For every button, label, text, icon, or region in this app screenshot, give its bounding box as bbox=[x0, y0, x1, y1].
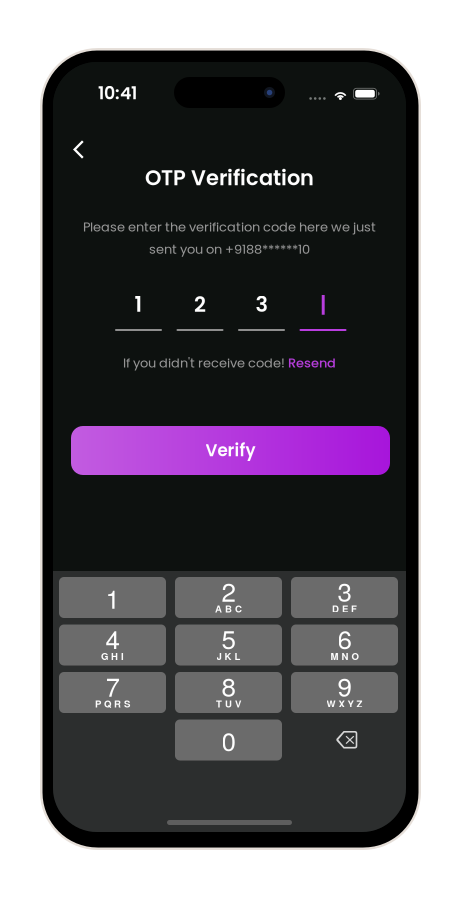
staticText: sent you on +9188******10 bbox=[149, 240, 310, 258]
button[interactable]: Digit field bbox=[299, 294, 346, 331]
staticText: If you didn't receive code! bbox=[123, 354, 285, 372]
staticText: G H I bbox=[101, 649, 124, 663]
staticText: 3 bbox=[337, 572, 351, 609]
button[interactable]: 9 bbox=[291, 672, 398, 713]
staticText: 10:41 bbox=[98, 81, 137, 105]
staticText: W X Y Z bbox=[326, 697, 362, 710]
staticText: 6 bbox=[337, 619, 351, 657]
staticText: D E F bbox=[332, 602, 357, 615]
staticText: Resend bbox=[285, 354, 336, 372]
button[interactable]: Digit field bbox=[176, 294, 223, 331]
staticText: 8 bbox=[221, 667, 235, 704]
button[interactable]: Digit field bbox=[115, 294, 162, 331]
button[interactable]: 0 bbox=[175, 719, 282, 760]
button[interactable]: 4 bbox=[59, 624, 166, 665]
button[interactable]: Delete bbox=[291, 719, 398, 760]
button[interactable]: 8 bbox=[175, 672, 282, 713]
staticText: 4 bbox=[105, 619, 119, 657]
button[interactable]: 7 bbox=[59, 672, 166, 713]
staticText: Please enter the verification code here … bbox=[83, 218, 376, 236]
staticText: 5 bbox=[221, 619, 235, 657]
staticText: 2 bbox=[194, 290, 206, 319]
staticText: 1 bbox=[105, 579, 119, 616]
staticText: 0 bbox=[221, 721, 235, 759]
button[interactable]: 3 bbox=[291, 577, 398, 618]
staticText: | bbox=[320, 290, 326, 319]
button[interactable]: 2 bbox=[175, 577, 282, 618]
button[interactable]: Digit field bbox=[238, 294, 285, 331]
staticText: 1 bbox=[134, 290, 142, 319]
staticText: 2 bbox=[221, 572, 235, 609]
staticText: T U V bbox=[216, 697, 241, 710]
staticText: A B C bbox=[215, 602, 242, 615]
staticText: Verify bbox=[205, 439, 255, 462]
button[interactable]: 1 bbox=[59, 577, 166, 618]
staticText: OTP Verification bbox=[145, 163, 314, 193]
button[interactable]: Back bbox=[61, 131, 101, 171]
button[interactable]: Resend bbox=[285, 354, 336, 372]
button[interactable]: 5 bbox=[175, 624, 282, 665]
staticText: J K L bbox=[216, 649, 240, 663]
staticText: 9 bbox=[337, 667, 351, 704]
staticText: 3 bbox=[255, 290, 267, 319]
staticText: 7 bbox=[105, 667, 119, 704]
button[interactable]: Verify bbox=[71, 426, 390, 475]
button[interactable]: 6 bbox=[291, 624, 398, 665]
staticText: M N O bbox=[330, 649, 358, 663]
staticText: P Q R S bbox=[95, 697, 130, 710]
